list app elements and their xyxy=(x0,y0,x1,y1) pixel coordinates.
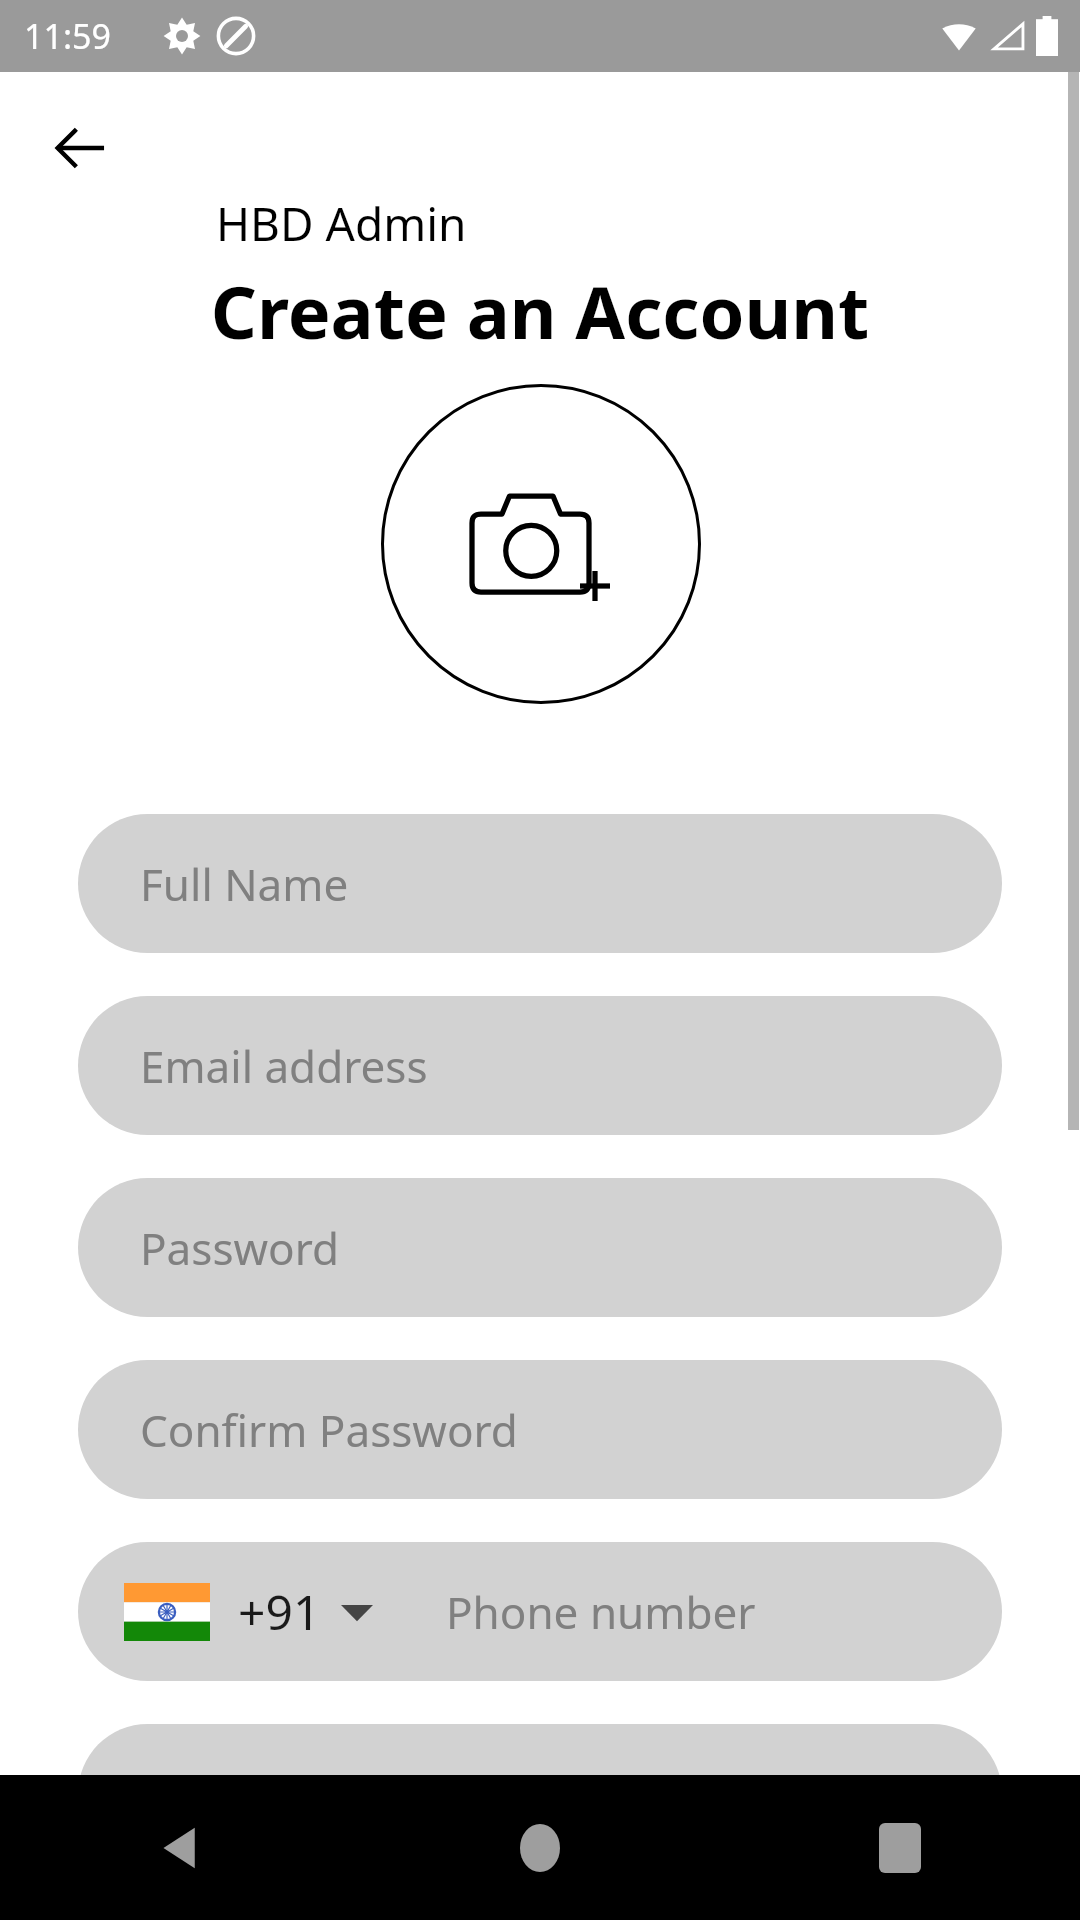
button[interactable]: Password xyxy=(78,1178,1002,1317)
button[interactable]: Recent apps xyxy=(850,1798,950,1898)
staticText: +91 xyxy=(238,1579,321,1644)
staticText: Full Name xyxy=(140,854,349,914)
staticText: Create an Account xyxy=(0,262,1080,360)
button[interactable]: Home xyxy=(490,1798,590,1898)
button[interactable]: Website Link xyxy=(78,1724,1002,1863)
staticText: HBD Admin xyxy=(216,192,467,255)
staticText: Password xyxy=(140,1218,340,1278)
staticText: Email address xyxy=(140,1036,428,1096)
button[interactable]: Full Name xyxy=(78,814,1002,953)
button[interactable]: Select country code xyxy=(124,1579,373,1644)
staticText: 11:59 xyxy=(24,13,111,59)
button[interactable]: Back xyxy=(40,108,120,188)
button[interactable]: Email address xyxy=(78,996,1002,1135)
staticText: Phone number xyxy=(446,1582,756,1642)
staticText: Website Link xyxy=(140,1764,402,1824)
button[interactable]: Add profile photo xyxy=(381,384,701,704)
button[interactable]: Confirm Password xyxy=(78,1360,1002,1499)
staticText: Confirm Password xyxy=(140,1400,518,1460)
button[interactable]: Back xyxy=(130,1798,230,1898)
